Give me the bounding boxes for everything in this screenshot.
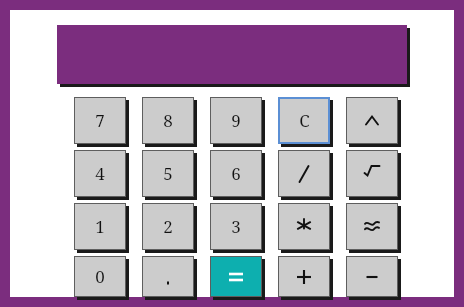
button[interactable]: Power	[346, 97, 398, 144]
button[interactable]: 9	[210, 97, 262, 144]
button[interactable]: Decimal point	[142, 256, 194, 297]
button[interactable]: 3	[210, 203, 262, 250]
button[interactable]: 7	[74, 97, 126, 144]
button[interactable]: Approximately	[346, 203, 398, 250]
staticText: 6	[231, 162, 241, 185]
staticText: 4	[95, 162, 105, 185]
button[interactable]: 4	[74, 150, 126, 197]
button[interactable]: 5	[142, 150, 194, 197]
staticText: C	[299, 109, 310, 132]
button[interactable]: 2	[142, 203, 194, 250]
staticText: 5	[163, 162, 173, 185]
staticText: 8	[163, 109, 173, 132]
button[interactable]: Square root	[346, 150, 398, 197]
button[interactable]: Plus	[278, 256, 330, 297]
button[interactable]: Minus	[346, 256, 398, 297]
button[interactable]: 6	[210, 150, 262, 197]
button[interactable]: 1	[74, 203, 126, 250]
staticText: 2	[163, 215, 173, 238]
staticText: 7	[95, 109, 105, 132]
staticText: 9	[231, 109, 241, 132]
staticText: 3	[231, 215, 241, 238]
staticText: 0	[95, 265, 105, 288]
button[interactable]: Divide	[278, 150, 330, 197]
button[interactable]: 8	[142, 97, 194, 144]
button[interactable]: 0	[74, 256, 126, 297]
staticText: 1	[95, 215, 105, 238]
button[interactable]: Equals	[210, 256, 262, 297]
button[interactable]: Multiply	[278, 203, 330, 250]
button[interactable]: Clear	[278, 97, 330, 144]
